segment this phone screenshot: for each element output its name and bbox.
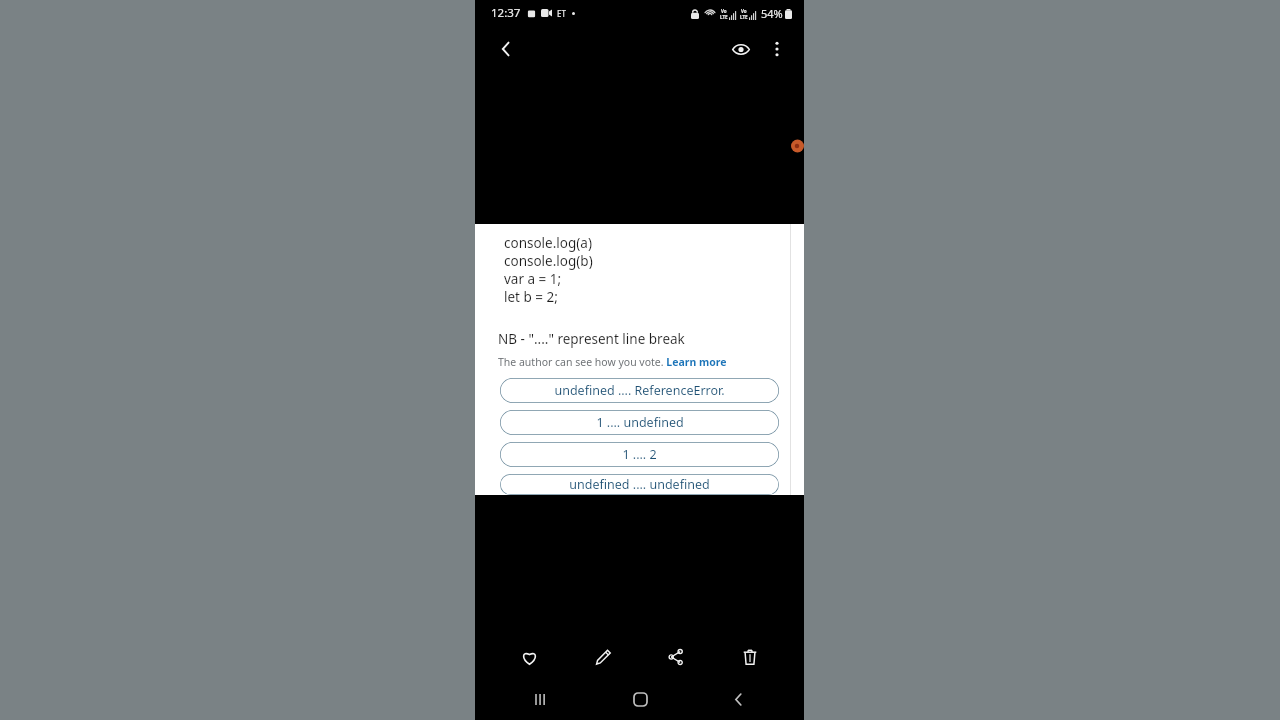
button[interactable]: Delete [730, 637, 770, 677]
staticText: undefined .... undefined [569, 476, 710, 493]
button[interactable]: Share [656, 637, 696, 677]
staticText: Vo [741, 8, 747, 14]
button[interactable]: Home [622, 681, 658, 717]
staticText: let b = 2; [504, 288, 558, 306]
button[interactable]: More options [760, 32, 794, 66]
staticText: Vo [721, 8, 727, 14]
staticText: var a = 1; [504, 270, 562, 288]
staticText: 1 .... 2 [622, 446, 657, 463]
button[interactable]: Preview [722, 30, 760, 68]
staticText: 1 .... undefined [596, 414, 684, 431]
button[interactable]: Like [509, 637, 549, 677]
staticText: 54% [761, 6, 783, 21]
staticText: LTE [720, 14, 728, 20]
staticText: NB - "...." represent line break [498, 330, 685, 348]
button[interactable]: undefined .... ReferenceError. [500, 378, 779, 403]
button[interactable]: Recents [523, 681, 559, 717]
staticText: The author can see how you vote. Learn m… [498, 355, 727, 369]
staticText: undefined .... ReferenceError. [554, 382, 725, 399]
button[interactable]: Back [720, 681, 756, 717]
staticText: ET [557, 8, 566, 19]
staticText: console.log(b) [504, 252, 593, 270]
button[interactable]: 1 .... 2 [500, 442, 779, 467]
button[interactable]: Back [487, 30, 525, 68]
staticText: LTE [740, 14, 748, 20]
button[interactable]: The author can see how you vote. Learn m… [498, 355, 727, 369]
staticText: console.log(a) [504, 234, 592, 252]
button[interactable]: 1 .... undefined [500, 410, 779, 435]
button[interactable]: undefined .... undefined [500, 474, 779, 495]
staticText: 12:37 [491, 5, 521, 21]
button[interactable]: Edit [583, 637, 623, 677]
